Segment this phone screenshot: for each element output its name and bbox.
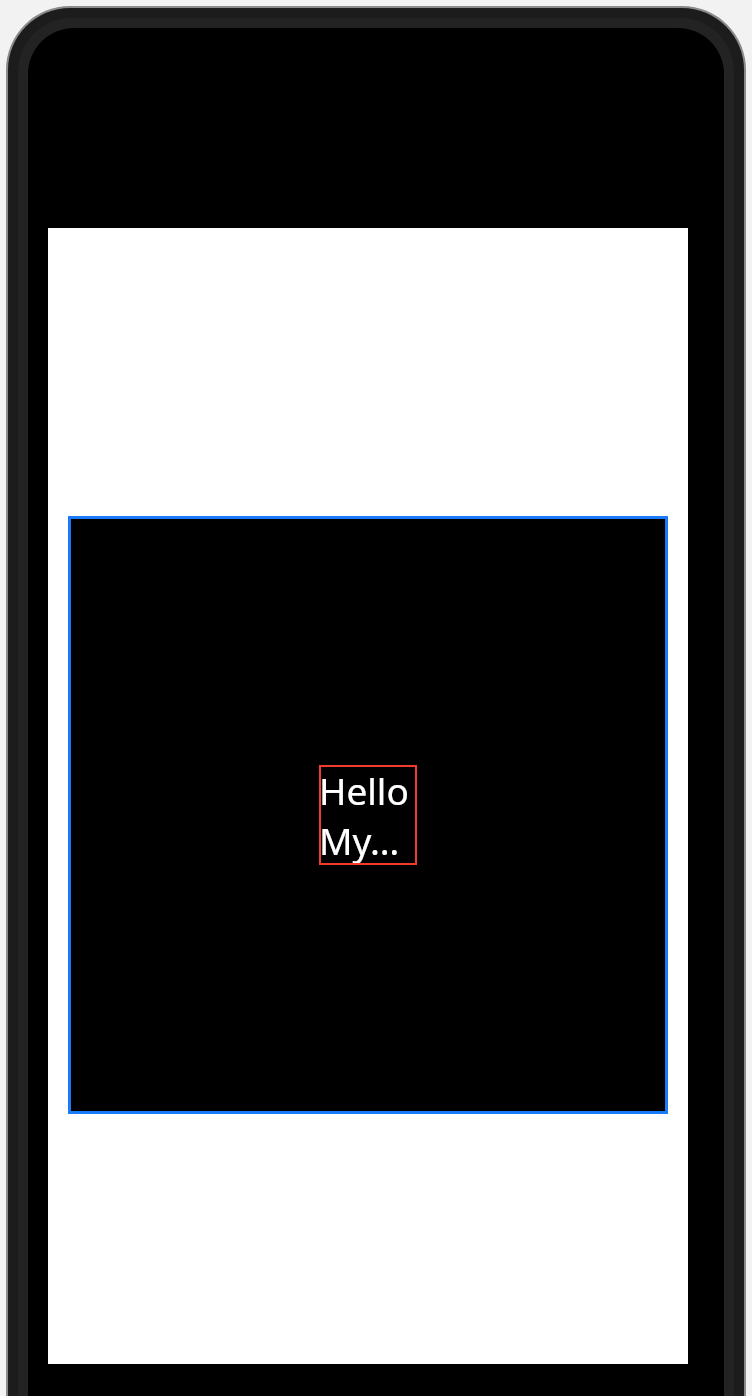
button[interactable]: Hello! My greeting	[319, 765, 417, 865]
staticText: Hello!	[319, 765, 417, 815]
staticText: My…	[319, 815, 400, 865]
button[interactable]: Hello! My greeting	[68, 516, 668, 1114]
